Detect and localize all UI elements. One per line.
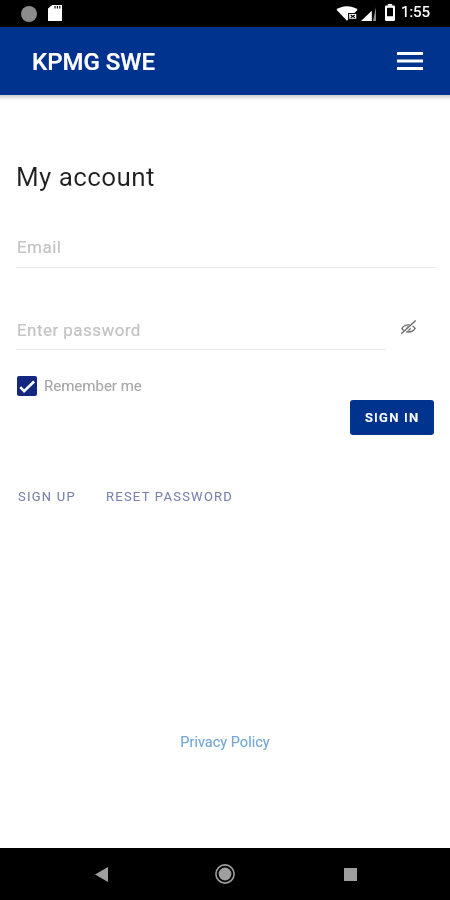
button[interactable]: Show password xyxy=(391,310,425,344)
staticText: Privacy Policy xyxy=(180,734,270,751)
staticText: 1:55 xyxy=(401,3,430,21)
staticText: Enter password xyxy=(17,320,141,340)
button[interactable]: RESET PASSWORD xyxy=(106,489,234,504)
button[interactable]: Recent apps xyxy=(326,850,374,898)
button[interactable]: Privacy Policy xyxy=(180,734,270,751)
button[interactable]: SIGN UP xyxy=(18,489,76,504)
button[interactable]: Home xyxy=(201,850,249,898)
staticText: Remember me xyxy=(44,377,142,395)
staticText: RESET PASSWORD xyxy=(106,489,234,504)
button[interactable]: SIGN IN xyxy=(350,400,434,435)
button[interactable]: Back xyxy=(77,850,125,898)
staticText: SIGN IN xyxy=(365,410,420,425)
staticText: KPMG SWE xyxy=(32,48,155,76)
staticText: Email xyxy=(17,237,62,257)
button[interactable]: Remember me xyxy=(17,376,142,396)
button[interactable]: Open navigation menu xyxy=(386,37,434,85)
staticText: My account xyxy=(16,162,155,192)
staticText: SIGN UP xyxy=(18,489,76,504)
